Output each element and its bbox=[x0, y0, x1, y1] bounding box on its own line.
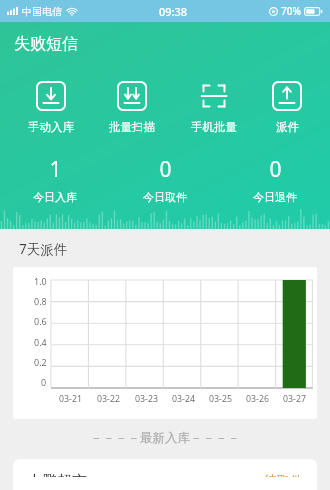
staticText: 03-22 bbox=[97, 393, 120, 405]
staticText: 今日取件 bbox=[143, 190, 187, 204]
button[interactable]: 大鹏超市 bbox=[13, 459, 317, 490]
staticText: 派件 bbox=[276, 120, 299, 134]
staticText: 03-23 bbox=[135, 393, 158, 405]
staticText: 中国电信 bbox=[22, 5, 62, 18]
staticText: 大鹏超市 bbox=[27, 472, 87, 477]
staticText: 待取件 bbox=[264, 472, 303, 477]
staticText: 批量扫描 bbox=[109, 120, 155, 134]
button[interactable]: 派件 bbox=[264, 79, 310, 136]
button[interactable]: 手动入库 bbox=[20, 79, 82, 136]
staticText: 03-21 bbox=[59, 393, 82, 405]
staticText: 0.8 bbox=[34, 295, 47, 307]
staticText: 1 bbox=[49, 155, 62, 184]
staticText: 1.0 bbox=[34, 275, 47, 287]
staticText: －－－－最新入库－－－－ bbox=[90, 430, 240, 446]
staticText: 03-27 bbox=[283, 393, 306, 405]
staticText: 7天派件 bbox=[19, 240, 68, 258]
staticText: 03-24 bbox=[172, 393, 195, 405]
staticText: 手动入库 bbox=[28, 120, 74, 134]
staticText: 09:38 bbox=[159, 4, 188, 19]
staticText: 今日退件 bbox=[253, 190, 297, 204]
staticText: 03-25 bbox=[209, 393, 232, 405]
button[interactable]: 1 bbox=[0, 153, 110, 206]
staticText: 今日入库 bbox=[33, 190, 77, 204]
staticText: 70% bbox=[281, 4, 301, 18]
staticText: 0 bbox=[269, 155, 282, 184]
staticText: 0.2 bbox=[34, 356, 47, 368]
staticText: 失败短信 bbox=[14, 34, 78, 54]
staticText: 0.4 bbox=[34, 336, 47, 348]
staticText: 手机批量 bbox=[191, 120, 237, 134]
button[interactable]: 0 bbox=[110, 153, 220, 206]
button[interactable]: 批量扫描 bbox=[101, 79, 163, 136]
staticText: 0 bbox=[159, 155, 172, 184]
button[interactable]: 手机批量扫描 bbox=[183, 79, 245, 136]
staticText: 0 bbox=[41, 376, 47, 388]
staticText: 0.6 bbox=[34, 315, 47, 327]
staticText: 03-26 bbox=[246, 393, 269, 405]
button[interactable]: 0 bbox=[220, 153, 330, 206]
